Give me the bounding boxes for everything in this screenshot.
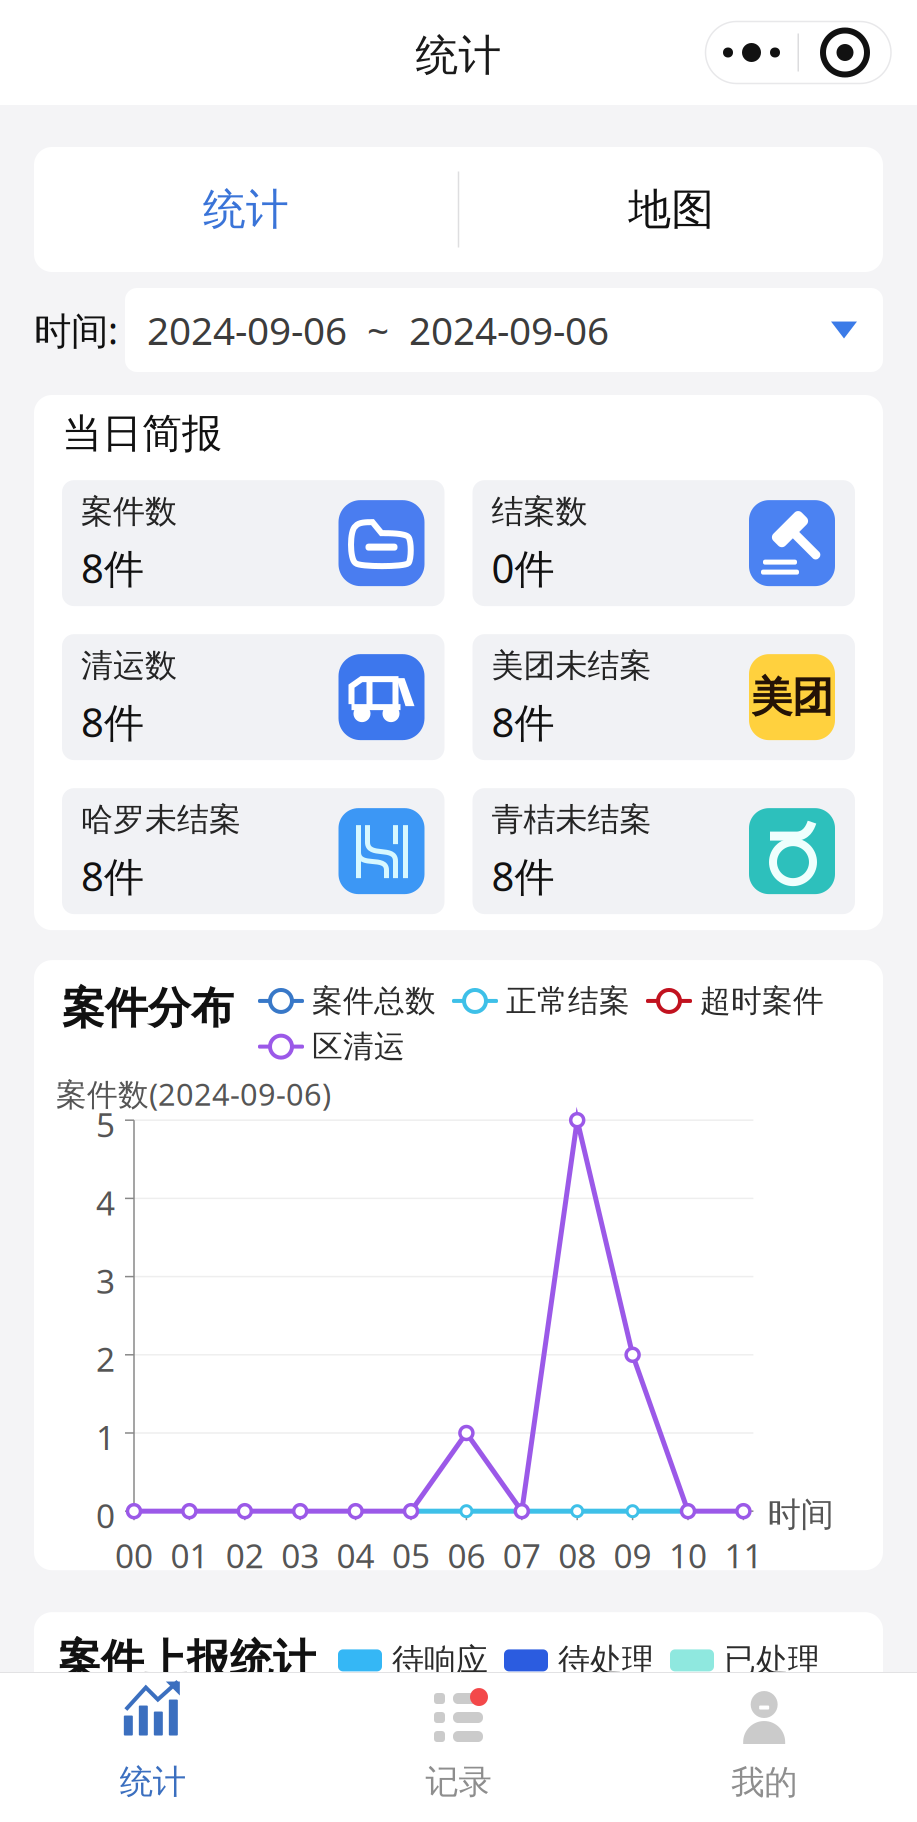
button[interactable]: More — [705, 21, 797, 83]
staticText: 区清运 — [312, 1028, 405, 1065]
button[interactable]: 清运数 — [62, 634, 444, 760]
staticText: 0件 — [491, 541, 554, 594]
button[interactable]: 我的 — [611, 1672, 917, 1822]
staticText: 待响应 — [392, 1641, 488, 1680]
staticText: 5 — [96, 1102, 115, 1146]
staticText: 记录 — [425, 1761, 491, 1802]
staticText: 当日简报 — [62, 409, 222, 458]
staticText: 案件上报统计 — [58, 1634, 316, 1687]
staticText: 8件 — [491, 695, 554, 748]
staticText: 超时案件 — [700, 982, 824, 1020]
button[interactable]: 美团未结案 — [472, 634, 855, 760]
staticText: 我的 — [731, 1762, 797, 1803]
staticText: 青桔未结案 — [491, 800, 651, 839]
button[interactable]: 案件数 — [62, 480, 444, 606]
staticText: 时间: — [34, 305, 118, 355]
button[interactable]: 哈罗未结案 — [62, 788, 444, 914]
staticText: 04 — [337, 1533, 375, 1577]
staticText: 时间 — [767, 1494, 833, 1535]
staticText: 3 — [96, 1259, 115, 1303]
staticText: 地图 — [628, 183, 714, 236]
staticText: 01 — [170, 1533, 208, 1577]
button[interactable]: 青桔未结案 — [472, 788, 855, 914]
staticText: 8件 — [81, 541, 144, 594]
staticText: 00 — [115, 1533, 153, 1577]
staticText: 统计 — [415, 29, 501, 82]
staticText: 2 — [96, 1337, 115, 1381]
staticText: 案件总数 — [312, 982, 436, 1020]
staticText: 09 — [614, 1533, 652, 1577]
staticText: 美团未结案 — [491, 646, 651, 685]
staticText: 美团 — [751, 672, 833, 722]
staticText: 8件 — [491, 849, 554, 902]
staticText: 案件数(2024-09-06) — [56, 1073, 331, 1114]
button[interactable]: Close — [799, 21, 891, 83]
staticText: 8件 — [81, 849, 144, 902]
staticText: 案件数 — [81, 492, 177, 531]
staticText: 08 — [558, 1533, 596, 1577]
staticText: 已处理 — [724, 1641, 820, 1680]
button[interactable]: 统计 — [34, 147, 458, 272]
staticText: 07 — [503, 1533, 541, 1577]
staticText: 8件 — [81, 695, 144, 748]
staticText: 4 — [96, 1180, 115, 1225]
button[interactable]: 2024-09-06 ~ 2024-09-06 — [125, 288, 883, 372]
staticText: 03 — [281, 1533, 319, 1577]
staticText: 2024-09-06 ~ 2024-09-06 — [147, 304, 609, 356]
staticText: 0 — [96, 1493, 115, 1537]
staticText: 案件分布 — [62, 982, 234, 1034]
button[interactable]: 记录 — [306, 1672, 611, 1822]
staticText: 05 — [392, 1533, 430, 1577]
staticText: 清运数 — [81, 646, 177, 685]
staticText: 02 — [226, 1533, 264, 1577]
staticText: 11 — [724, 1533, 762, 1577]
staticText: 结案数 — [491, 492, 587, 531]
staticText: 统计 — [120, 1761, 186, 1802]
staticText: 1 — [96, 1415, 115, 1459]
staticText: 10 — [669, 1533, 707, 1577]
staticText: 哈罗未结案 — [81, 800, 241, 839]
staticText: 06 — [447, 1533, 485, 1577]
staticText: 统计 — [203, 183, 289, 236]
staticText: 正常结案 — [506, 982, 630, 1020]
button[interactable]: 统计 — [0, 1672, 306, 1822]
button[interactable]: 地图 — [459, 147, 883, 272]
staticText: 待处理 — [558, 1641, 654, 1680]
button[interactable]: 结案数 — [472, 480, 855, 606]
